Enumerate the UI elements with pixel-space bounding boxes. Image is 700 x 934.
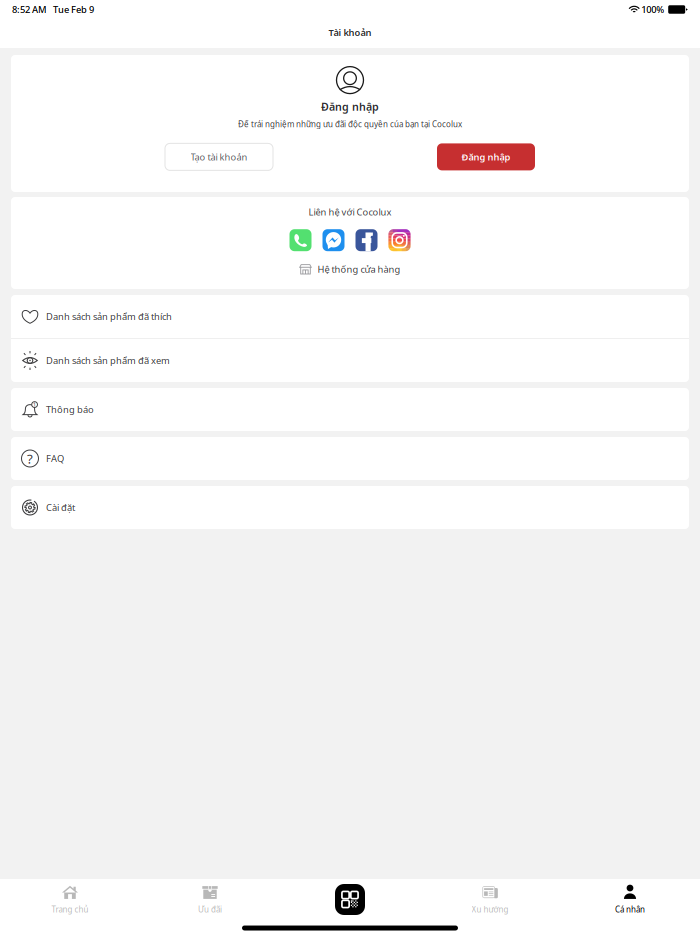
button[interactable]: Xu hướng [420,881,560,917]
staticText: 1 [33,401,36,408]
staticText: Đăng nhập [321,100,379,114]
button[interactable]: Cài đặt [11,486,689,529]
staticText: Tài khoản [328,26,371,39]
staticText: 100% [639,3,664,16]
button[interactable]: Tạo tài khoản [165,143,273,170]
staticText: Để trải nghiệm những ưu đãi độc quyền củ… [238,119,462,129]
button[interactable]: Đăng nhập [437,143,535,170]
button[interactable]: Ưu đãi [140,881,280,917]
button[interactable]: Danh sách sản phẩm đã thích [11,295,689,338]
staticText: Đăng nhập [461,151,510,163]
button[interactable]: Facebook [355,229,377,251]
button[interactable]: Trang chủ [0,881,140,917]
staticText: Cá nhân [615,904,645,915]
button[interactable]: Cá nhân [560,881,700,917]
button[interactable]: Hệ thống cửa hàng [299,262,400,276]
staticText: Danh sách sản phẩm đã thích [46,310,172,323]
staticText: Thông báo [46,403,94,416]
button[interactable]: Messenger [322,229,344,251]
staticText: Trang chủ [51,904,88,915]
staticText: Xu hướng [471,904,508,915]
staticText: FAQ [46,452,64,465]
staticText: 8:52 AM Tue Feb 9 [12,3,94,16]
button[interactable]: Danh sách sản phẩm đã xem [11,339,689,382]
staticText: Cài đặt [46,501,75,514]
button[interactable]: Scan QR code [280,881,420,917]
button[interactable]: Instagram [388,229,410,251]
staticText: Tạo tài khoản [190,151,247,163]
button[interactable]: 1 [11,388,689,431]
staticText: Liên hệ với Cocolux [308,206,391,218]
staticText: Hệ thống cửa hàng [317,263,400,275]
staticText: Danh sách sản phẩm đã xem [46,354,170,367]
staticText: ? [27,450,33,467]
staticText: Ưu đãi [198,904,222,915]
button[interactable]: Call Cocolux [289,229,311,251]
button[interactable]: ? [11,437,689,480]
